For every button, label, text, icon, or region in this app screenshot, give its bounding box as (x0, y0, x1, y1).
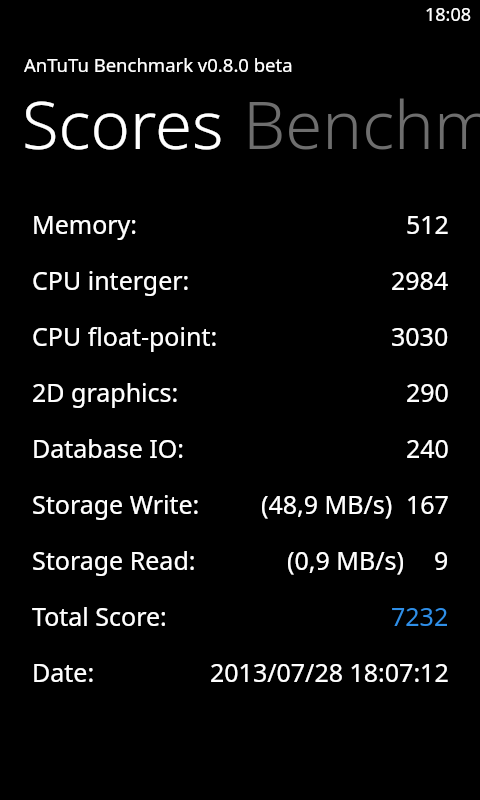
staticText: 2984 (391, 263, 449, 297)
staticText: 2013/07/28 18:07:12 (210, 655, 449, 689)
staticText: 18:08 (425, 2, 472, 27)
button[interactable]: Storage Write: (0, 476, 480, 532)
button[interactable]: Database IO: (0, 420, 480, 476)
button[interactable]: Benchmark (243, 77, 480, 168)
button[interactable]: Scores (22, 77, 224, 168)
staticText: AnTuTu Benchmark v0.8.0 beta (24, 52, 293, 77)
button[interactable]: Date: (0, 644, 480, 700)
staticText: Memory: (32, 207, 138, 241)
staticText: 240 (406, 431, 449, 465)
staticText: 3030 (391, 319, 449, 353)
staticText: 2D graphics: (32, 375, 179, 409)
staticText: (0,9 MB/s) (287, 543, 405, 577)
staticText: 9 (434, 543, 449, 577)
button[interactable]: Total Score: (0, 588, 480, 644)
button[interactable]: 2D graphics: (0, 364, 480, 420)
staticText: Benchmark (243, 77, 480, 168)
staticText: Scores (22, 77, 224, 168)
staticText: CPU float-point: (32, 319, 218, 353)
other: Status bar clock (433, 0, 480, 30)
button[interactable]: CPU interger: (0, 252, 480, 308)
staticText: 167 (406, 487, 449, 521)
staticText: Database IO: (32, 431, 185, 465)
staticText: 512 (406, 207, 449, 241)
button[interactable]: Memory: (0, 196, 480, 252)
staticText: Date: (32, 655, 95, 689)
staticText: CPU interger: (32, 263, 190, 297)
staticText: 7232 (391, 599, 449, 633)
button[interactable]: Storage Read: (0, 532, 480, 588)
staticText: (48,9 MB/s) (261, 487, 393, 521)
staticText: 290 (406, 375, 449, 409)
staticText: Storage Read: (32, 543, 196, 577)
staticText: Total Score: (32, 599, 167, 633)
button[interactable]: CPU float-point: (0, 308, 480, 364)
staticText: Storage Write: (32, 487, 200, 521)
